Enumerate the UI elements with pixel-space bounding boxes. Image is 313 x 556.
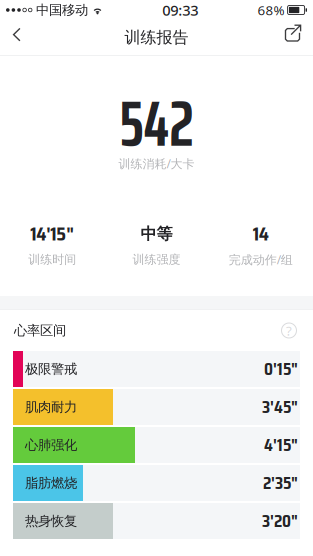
staticText: 68% bbox=[258, 1, 285, 19]
staticText: 14 bbox=[253, 219, 269, 249]
staticText: 09:33 bbox=[162, 0, 198, 20]
staticText: 心率区间 bbox=[14, 322, 66, 339]
button[interactable]: 心率区间说明 bbox=[274, 315, 304, 345]
staticText: 0'15" bbox=[264, 355, 298, 383]
staticText: 训练时间 bbox=[28, 252, 76, 267]
staticText: 训练强度 bbox=[132, 252, 180, 267]
staticText: 心肺强化 bbox=[25, 437, 77, 453]
staticText: 脂肪燃烧 bbox=[25, 475, 77, 491]
staticText: 3'45" bbox=[262, 393, 298, 421]
staticText: 542 bbox=[119, 75, 193, 173]
staticText: 训练消耗/大卡 bbox=[118, 155, 194, 171]
button[interactable]: 返回 bbox=[0, 21, 34, 53]
staticText: 训练报告 bbox=[124, 28, 188, 47]
button[interactable]: 分享 bbox=[279, 21, 313, 53]
staticText: ? bbox=[286, 322, 292, 339]
staticText: 极限警戒 bbox=[25, 361, 77, 377]
staticText: 14'15" bbox=[30, 219, 74, 249]
staticText: 2'35" bbox=[263, 469, 298, 497]
staticText: 中国移动 bbox=[36, 2, 88, 18]
staticText: 3'20" bbox=[262, 507, 298, 535]
staticText: 热身恢复 bbox=[25, 513, 77, 529]
staticText: 4'15" bbox=[264, 431, 298, 459]
staticText: 肌肉耐力 bbox=[25, 399, 77, 415]
staticText: 中等 bbox=[140, 224, 172, 244]
staticText: 完成动作/组 bbox=[229, 251, 293, 267]
